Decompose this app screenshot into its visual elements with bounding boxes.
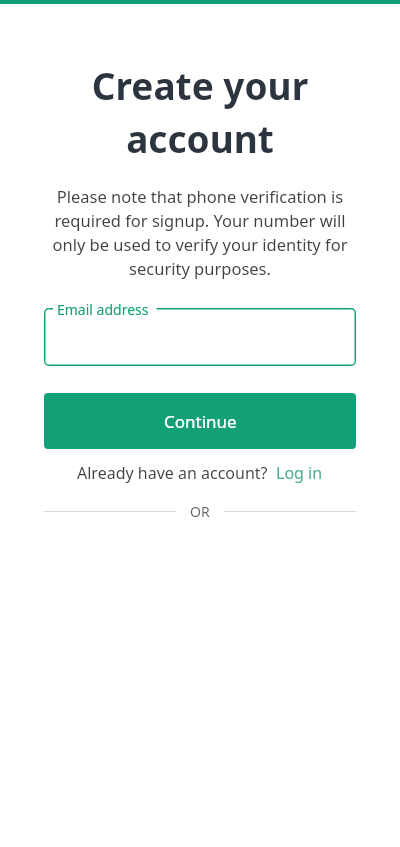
- staticText: Continue: [164, 410, 237, 433]
- staticText: Already have an account?: [77, 462, 268, 484]
- staticText: Log in: [276, 462, 323, 484]
- staticText: Please note that phone verification is r…: [44, 185, 356, 280]
- button[interactable]: Email address: [44, 308, 356, 366]
- button[interactable]: Continue: [44, 393, 356, 449]
- staticText: Email address: [57, 300, 149, 319]
- button[interactable]: Log in: [268, 462, 323, 484]
- staticText: Create your account: [44, 60, 356, 163]
- staticText: OR: [190, 502, 210, 521]
